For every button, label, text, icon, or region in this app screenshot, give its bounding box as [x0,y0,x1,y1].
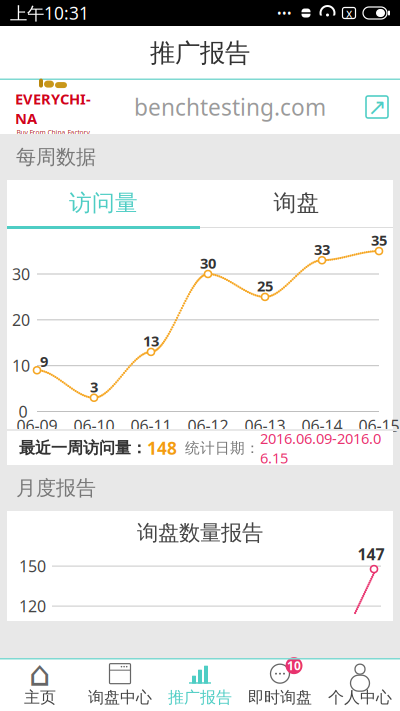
staticText: 30 [12,263,30,285]
staticText: 35 [371,230,387,250]
staticText: 06-14 [301,415,342,436]
staticText: ↗ [367,94,386,120]
staticText: 推广报告 [150,37,250,68]
staticText: 9 [40,351,48,371]
staticText: 2016.06.09-2016.06.15 [260,428,381,467]
staticText: 10 [12,355,30,376]
staticText: 06-11 [130,415,171,436]
staticText: 即时询盘 [248,688,312,707]
button[interactable]: 询盘 [200,180,393,226]
button[interactable]: Open site [364,94,390,120]
button[interactable]: 10 [240,659,320,709]
staticText: 月度报告 [16,476,96,500]
staticText: 20 [12,309,30,330]
staticText: 06-09 [16,415,57,436]
staticText: 10 [287,658,301,674]
staticText: 询盘数量报告 [137,520,263,546]
button[interactable]: ⌂ [0,659,80,709]
staticText: 147 [357,543,384,565]
staticText: EVERYCHINA [15,89,91,128]
staticText: ••• [277,5,292,21]
staticText: 06-12 [187,415,228,436]
staticText: 06-13 [244,415,285,436]
staticText: 06-15 [358,415,399,436]
staticText: 询盘中心 [88,688,152,707]
button[interactable]: 询盘中心 [80,659,160,709]
staticText: 每周数据 [16,145,96,169]
staticText: ⌂ [29,654,51,693]
staticText: 148 [147,436,177,459]
staticText: 06-10 [73,415,114,436]
staticText: 访问量 [69,189,138,217]
staticText: 0 [18,401,27,422]
staticText: 主页 [24,688,56,707]
staticText: x [346,5,352,21]
staticText: 120 [19,595,46,617]
staticText: 个人中心 [328,688,392,707]
button[interactable]: 访问量 [7,180,200,226]
button[interactable]: 推广报告 [160,659,240,709]
staticText: 33 [314,239,330,259]
staticText: 最近一周访问量： [19,438,147,458]
staticText: 上午10:31 [10,1,89,24]
staticText: 3 [90,377,98,396]
staticText: 30 [200,253,216,273]
staticText: benchtesting.com [134,92,326,122]
staticText: 150 [19,555,46,577]
button[interactable]: 个人中心 [320,659,400,709]
staticText: 统计日期： [185,439,260,457]
staticText: 25 [257,276,273,296]
staticText: Buy From China Factory [16,128,89,137]
staticText: 13 [143,331,159,351]
staticText: 询盘 [273,189,319,217]
staticText: 推广报告 [168,688,232,707]
